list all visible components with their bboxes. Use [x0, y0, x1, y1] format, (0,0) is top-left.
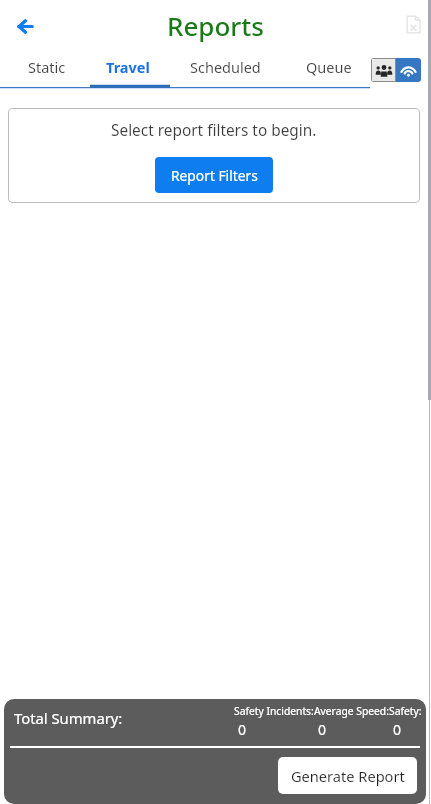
button[interactable]: Group view [371, 58, 396, 82]
button[interactable]: Report Filters [155, 157, 273, 193]
button[interactable]: Queue [306, 50, 352, 84]
button[interactable]: Export to Excel [400, 11, 426, 37]
staticText: Report Filters [171, 166, 258, 185]
button[interactable]: Static [28, 50, 66, 84]
staticText: 0 [238, 720, 247, 739]
staticText: Static [28, 57, 66, 77]
staticText: Safety: [389, 704, 422, 718]
staticText: Total Summary: [14, 708, 123, 728]
button[interactable]: Back [9, 10, 41, 42]
staticText: Queue [306, 57, 352, 77]
button[interactable]: Live view [396, 58, 421, 82]
staticText: 0 [318, 720, 327, 739]
button[interactable]: Generate Report [278, 757, 417, 794]
staticText: Reports [167, 8, 264, 43]
staticText: Generate Report [291, 766, 405, 786]
staticText: Safety Incidents: [234, 704, 314, 718]
button[interactable]: Travel [106, 50, 150, 84]
staticText: Select report filters to begin. [111, 120, 317, 141]
staticText: Scheduled [190, 57, 261, 77]
staticText: Travel [106, 57, 150, 77]
staticText: Average Speed: [314, 704, 389, 718]
staticText: 0 [393, 720, 402, 739]
button[interactable]: Scheduled [190, 50, 261, 84]
